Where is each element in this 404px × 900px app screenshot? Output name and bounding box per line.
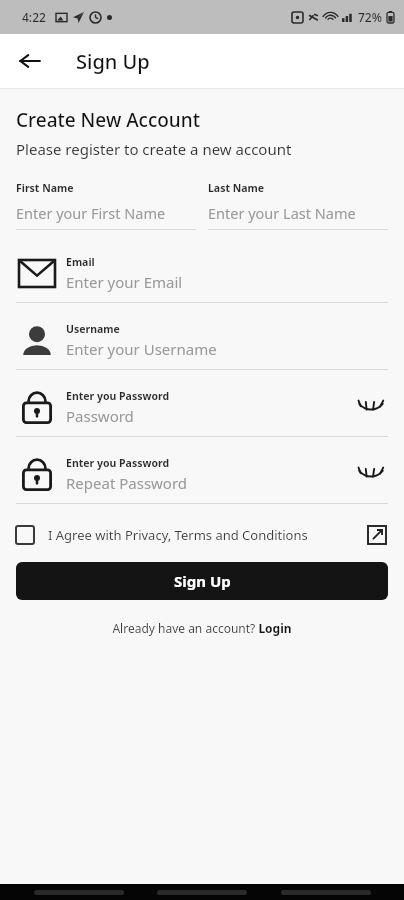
button[interactable]: Already have an account? Login xyxy=(112,620,292,636)
staticText: Enter your Email xyxy=(66,272,183,292)
button[interactable]: System navigation xyxy=(34,890,124,895)
staticText: Enter your Last Name xyxy=(208,203,356,223)
button[interactable]: System navigation xyxy=(157,890,247,895)
button[interactable]: Enter you Password xyxy=(16,453,388,504)
staticText: Enter your Username xyxy=(66,339,217,359)
staticText: Create New Account xyxy=(16,107,200,133)
button[interactable]: Back xyxy=(10,41,50,81)
button[interactable]: Last Name xyxy=(208,181,388,230)
button[interactable]: Sign Up xyxy=(16,562,388,600)
button[interactable]: Enter you Password xyxy=(16,386,388,437)
staticText: Repeat Password xyxy=(66,473,188,493)
staticText: 4:22 xyxy=(22,9,46,25)
staticText: Please register to create a new account xyxy=(16,139,292,159)
button[interactable]: Toggle password visibility xyxy=(354,457,388,491)
staticText: Last Name xyxy=(208,181,265,195)
staticText: Password xyxy=(66,406,134,426)
staticText: Username xyxy=(66,322,120,336)
staticText: First Name xyxy=(16,181,74,195)
button[interactable]: System navigation xyxy=(281,890,371,895)
staticText: Enter your First Name xyxy=(16,203,166,223)
staticText: Enter you Password xyxy=(66,456,170,470)
staticText: 72% xyxy=(358,9,382,25)
staticText: I Agree with Privacy, Terms and Conditio… xyxy=(48,526,308,544)
button[interactable]: Email xyxy=(16,252,388,303)
button[interactable]: I Agree with Privacy, Terms and Conditio… xyxy=(16,518,388,552)
staticText: Sign Up xyxy=(76,48,150,75)
button[interactable]: First Name xyxy=(16,181,196,230)
staticText: Enter you Password xyxy=(66,389,170,403)
button[interactable]: Toggle password visibility xyxy=(354,390,388,424)
staticText: Sign Up xyxy=(174,571,231,591)
button[interactable]: Open terms and conditions xyxy=(366,524,388,546)
staticText: Email xyxy=(66,255,95,269)
button[interactable]: Username xyxy=(16,319,388,370)
